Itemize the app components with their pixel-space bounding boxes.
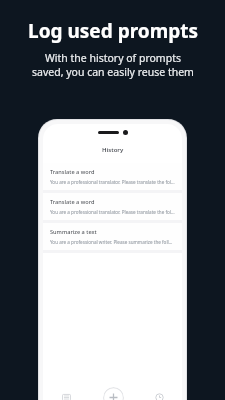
staticText: You are a professional writer. Please su… [50,239,175,245]
button[interactable]: Summarize a text [43,223,182,250]
button[interactable]: History [136,391,182,400]
staticText: With the history of prompts saved, you c… [32,51,194,79]
button[interactable]: Prompt [43,391,90,400]
staticText: Log used prompts [28,18,198,44]
staticText: You are a professional translator. Pleas… [50,179,175,185]
staticText: History [102,146,124,154]
staticText: Translate a word [50,198,95,206]
button[interactable]: New prompt [103,387,124,400]
button[interactable]: Translate a word [43,193,182,220]
button[interactable]: Translate a word [43,163,182,190]
staticText: Summarize a text [50,228,97,236]
staticText: Translate a word [50,168,95,176]
staticText: You are a professional translator. Pleas… [50,209,175,215]
